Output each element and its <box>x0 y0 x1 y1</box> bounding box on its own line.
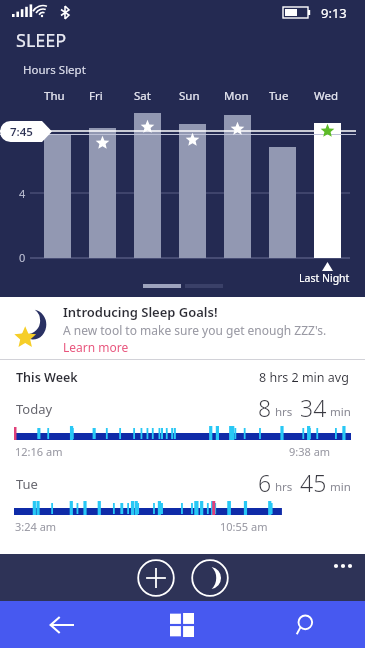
staticText: 4 <box>19 186 26 201</box>
staticText: Mon <box>224 88 251 104</box>
staticText: 9:13 <box>321 4 347 22</box>
staticText: 8 hrs 2 min avg <box>259 369 349 386</box>
button[interactable]: Start <box>121 601 243 648</box>
staticText: This Week <box>16 369 78 386</box>
button[interactable]: Today <box>0 390 365 465</box>
staticText: hrs <box>275 479 293 495</box>
staticText: A new tool to make sure you get enough Z… <box>63 322 327 338</box>
staticText: Wed <box>314 88 341 104</box>
staticText: 6 <box>258 467 272 498</box>
staticText: Tue <box>269 88 296 104</box>
staticText: 8 <box>258 392 272 423</box>
staticText: hrs <box>275 404 293 420</box>
staticText: Hours Slept <box>23 62 86 78</box>
staticText: 12:16 am <box>15 444 63 459</box>
staticText: Sun <box>179 88 206 104</box>
button[interactable]: Search <box>243 601 365 648</box>
staticText: min <box>330 479 351 495</box>
staticText: 7:45 <box>10 124 33 140</box>
button[interactable]: More options <box>325 555 361 577</box>
staticText: 45 <box>300 467 327 498</box>
staticText: 0 <box>19 250 26 265</box>
staticText: 3:24 am <box>15 519 57 534</box>
staticText: 10:55 am <box>220 519 282 534</box>
button[interactable]: Add sleep <box>137 559 175 597</box>
staticText: Sat <box>134 88 161 104</box>
button[interactable]: Start sleep tracking <box>191 559 229 597</box>
staticText: Fri <box>89 88 116 104</box>
button[interactable]: Tue <box>0 465 365 540</box>
button[interactable]: Back <box>0 601 121 648</box>
staticText: SLEEP <box>16 28 67 53</box>
staticText: 34 <box>300 392 327 423</box>
staticText: Introducing Sleep Goals! <box>63 303 218 321</box>
staticText: 9:38 am <box>289 444 351 459</box>
staticText: min <box>330 404 351 420</box>
staticText: Learn more <box>63 339 129 355</box>
staticText: Tue <box>16 475 38 493</box>
button[interactable]: Introducing Sleep Goals! <box>0 297 365 359</box>
staticText: Thu <box>44 88 71 104</box>
staticText: Last Night <box>299 271 350 285</box>
staticText: Today <box>16 400 53 418</box>
